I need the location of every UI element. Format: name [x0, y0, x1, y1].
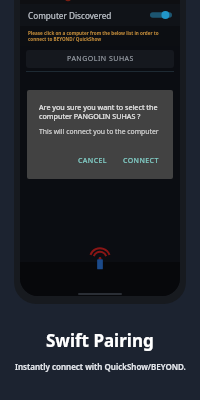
button[interactable]: Computer Discovered toggle — [150, 9, 172, 21]
staticText: CONNECT — [123, 156, 159, 166]
button[interactable]: CONNECT — [119, 153, 163, 169]
staticText: Are you sure you want to select the comp… — [39, 102, 163, 122]
button[interactable]: CANCEL — [74, 153, 111, 169]
staticText: Computer Discovered — [28, 10, 112, 21]
staticText: Swift Pairing — [46, 329, 154, 352]
staticText: This will connect you to the computer — [39, 127, 159, 136]
staticText: PANGOLIN SUHAS — [67, 54, 134, 64]
staticText: CANCEL — [78, 156, 107, 166]
staticText: Please click on a computer from the belo… — [28, 30, 172, 42]
button[interactable]: Computer Discovered — [20, 4, 180, 26]
button[interactable]: PANGOLIN SUHAS — [26, 50, 174, 68]
button[interactable]: Broadcast — [89, 250, 111, 272]
staticText: Instantly connect with QuickShow/BEYOND. — [15, 361, 186, 372]
